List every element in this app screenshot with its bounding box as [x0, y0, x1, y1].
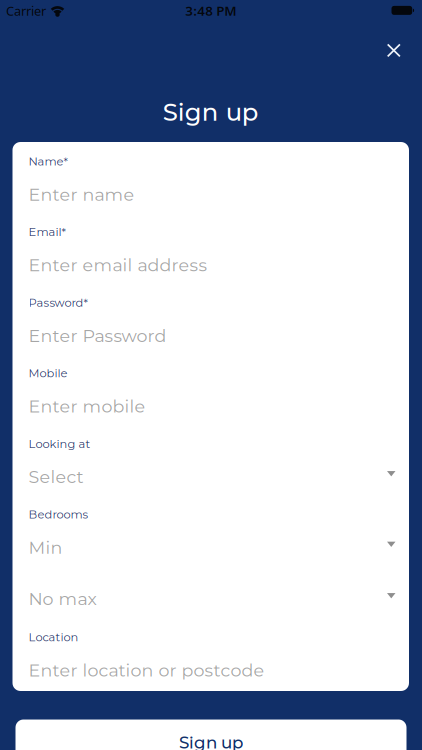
- button[interactable]: Sign up: [15, 719, 406, 750]
- button[interactable]: Close: [376, 32, 412, 68]
- staticText: Looking at: [28, 437, 90, 451]
- button[interactable]: Select: [12, 464, 409, 498]
- staticText: Sign up: [179, 732, 243, 750]
- staticText: Enter email address: [28, 254, 207, 276]
- staticText: Sign up: [163, 97, 259, 127]
- staticText: Location: [28, 630, 78, 644]
- staticText: Password*: [28, 296, 87, 310]
- staticText: Enter Password: [28, 325, 166, 346]
- staticText: Name*: [28, 154, 67, 168]
- staticText: Min: [28, 537, 62, 558]
- staticText: Bedrooms: [28, 507, 88, 521]
- staticText: No max: [28, 588, 96, 609]
- staticText: Enter name: [28, 184, 134, 205]
- staticText: Enter location or postcode: [28, 660, 264, 681]
- button[interactable]: Min: [12, 535, 409, 569]
- staticText: Email*: [28, 225, 65, 239]
- staticText: Select: [28, 466, 83, 487]
- staticText: 3:48 PM: [185, 2, 236, 20]
- staticText: Mobile: [28, 366, 67, 380]
- staticText: Enter mobile: [28, 396, 145, 417]
- staticText: Carrier: [6, 2, 46, 20]
- button[interactable]: No max: [12, 586, 409, 620]
